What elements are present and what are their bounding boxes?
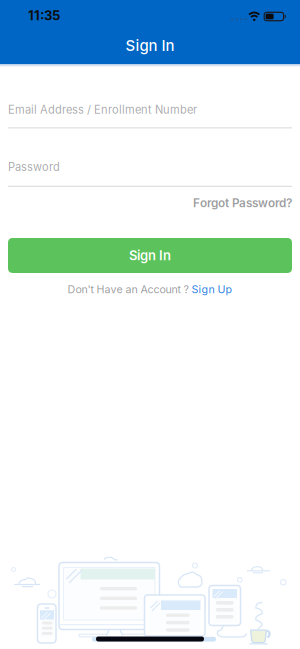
staticText: Email Address / Enrollment Number [8,103,197,116]
staticText: 11:35 [28,8,60,23]
button[interactable]: Sign Up [191,283,232,296]
button[interactable]: Sign In [8,238,292,273]
staticText: Sign Up [191,283,232,296]
staticText: Don't Have an Account ? [67,283,188,296]
button[interactable]: Password [0,160,292,187]
staticText: Sign In [125,36,174,55]
button[interactable]: Email Address / Enrollment Number [0,103,292,128]
button[interactable]: Forgot Password? [193,196,300,210]
staticText: Forgot Password? [193,196,292,210]
staticText: Sign In [129,248,171,263]
staticText: Password [8,160,60,174]
